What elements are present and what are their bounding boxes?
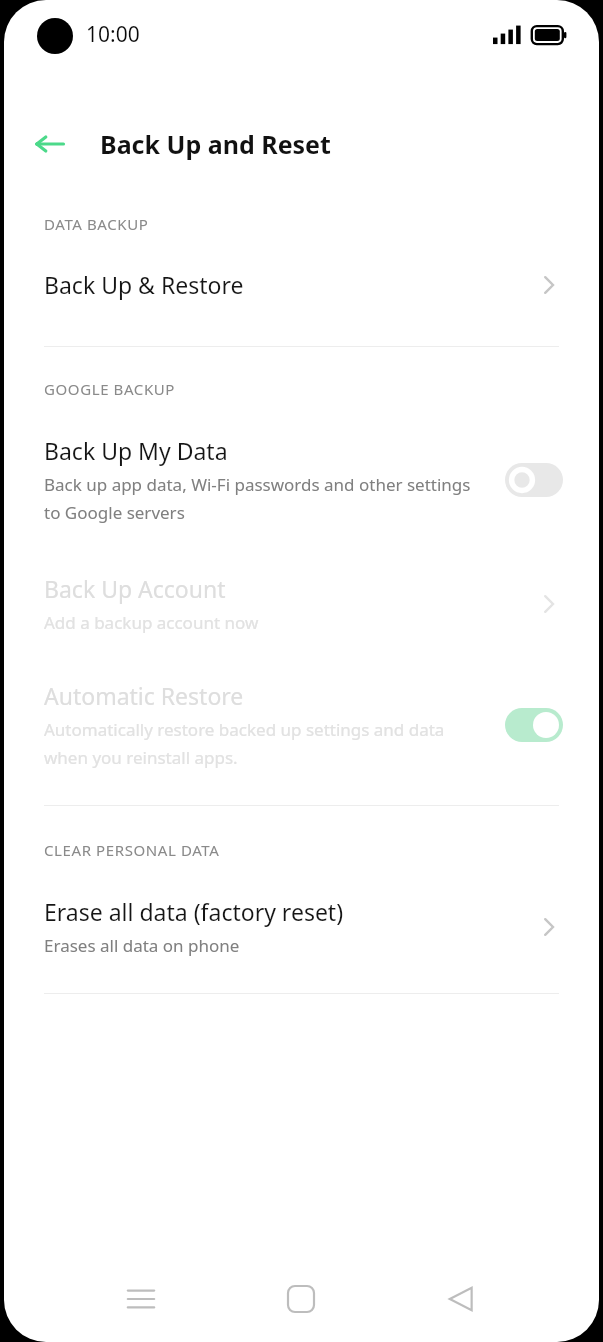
button[interactable]: Back [434,1272,488,1326]
button[interactable]: Back Up My Data [4,435,599,524]
staticText: Erases all data on phone [44,934,240,957]
button[interactable]: Toggle off [505,463,563,497]
staticText: GOOGLE BACKUP [44,379,176,399]
button[interactable]: Home [274,1272,328,1326]
button[interactable]: Back [24,118,76,170]
staticText: CLEAR PERSONAL DATA [44,840,220,860]
button[interactable]: Automatic Restore [4,680,599,769]
staticText: Back Up My Data [44,435,228,466]
staticText: Back up app data, Wi-Fi passwords and ot… [44,473,491,524]
button[interactable]: Recent apps [114,1272,168,1326]
staticText: Automatically restore backed up settings… [44,718,491,769]
staticText: 10:00 [86,20,140,49]
button[interactable]: Toggle on [505,708,563,742]
staticText: Back Up Account [44,573,226,604]
button[interactable]: Back Up & Restore [4,269,599,300]
staticText: Add a backup account now [44,611,259,634]
staticText: Back Up & Restore [44,269,244,300]
staticText: DATA BACKUP [44,214,149,234]
staticText: Erase all data (factory reset) [44,896,344,927]
button[interactable]: Back Up Account [4,573,599,634]
button[interactable]: Erase all data (factory reset) [4,896,599,957]
staticText: Back Up and Reset [100,127,331,161]
staticText: Automatic Restore [44,680,244,711]
